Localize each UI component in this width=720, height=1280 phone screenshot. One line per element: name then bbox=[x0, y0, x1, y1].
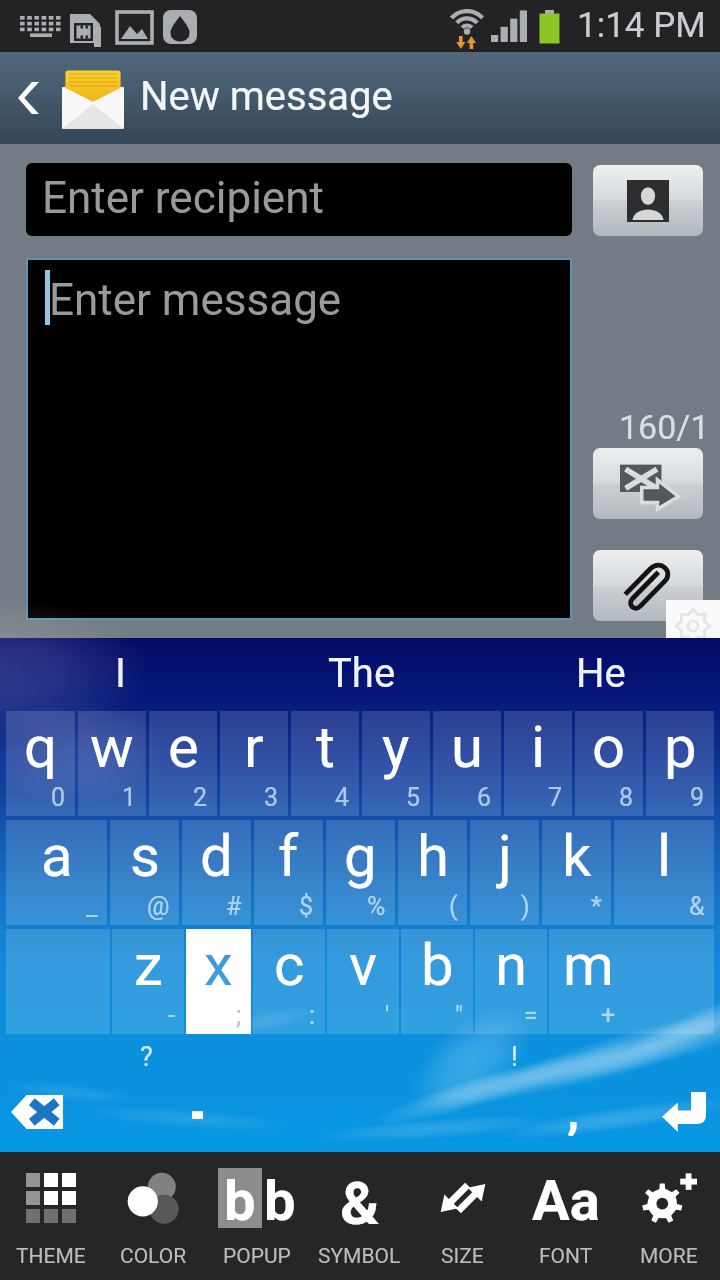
staticText: COLOR bbox=[120, 1244, 187, 1269]
staticText: 5 bbox=[406, 783, 421, 812]
staticText: 4 bbox=[335, 783, 350, 812]
button[interactable]: r bbox=[220, 711, 288, 816]
button[interactable] bbox=[170, 1087, 226, 1137]
staticText: q bbox=[24, 713, 57, 781]
button[interactable]: j bbox=[470, 820, 539, 925]
button[interactable]: Aa bbox=[514, 1152, 617, 1280]
button[interactable]: p bbox=[646, 711, 714, 816]
staticText: p bbox=[664, 713, 697, 781]
button[interactable]: n bbox=[475, 929, 547, 1034]
staticText: 2 bbox=[193, 783, 208, 812]
staticText: + bbox=[601, 1001, 616, 1030]
button[interactable]: h bbox=[398, 820, 467, 925]
button[interactable]: & bbox=[308, 1152, 411, 1280]
button[interactable]: Send message bbox=[593, 448, 703, 519]
staticText: * bbox=[591, 892, 602, 921]
button[interactable]: m bbox=[549, 929, 714, 1034]
button[interactable]: e bbox=[149, 711, 217, 816]
staticText: THEME bbox=[16, 1244, 86, 1269]
button[interactable]: , bbox=[545, 1082, 601, 1136]
staticText: ! bbox=[511, 1041, 518, 1073]
button[interactable]: I bbox=[0, 638, 241, 711]
staticText: SYMBOL bbox=[318, 1244, 401, 1269]
button[interactable]: He bbox=[482, 638, 720, 711]
button[interactable]: k bbox=[542, 820, 611, 925]
staticText: 160/1 bbox=[619, 407, 710, 447]
button[interactable]: w bbox=[78, 711, 146, 816]
button[interactable]: b bbox=[401, 929, 473, 1034]
button[interactable]: THEME bbox=[0, 1152, 102, 1280]
button[interactable]: Enter bbox=[650, 1084, 718, 1140]
button[interactable]: u bbox=[433, 711, 501, 816]
button[interactable]: a bbox=[6, 820, 107, 925]
button[interactable]: The bbox=[241, 638, 482, 711]
button[interactable]: s bbox=[110, 820, 179, 925]
button[interactable]: Shift bbox=[6, 929, 110, 1034]
staticText: , bbox=[567, 1082, 580, 1136]
staticText: a bbox=[41, 822, 73, 890]
button[interactable]: Enter message bbox=[28, 260, 570, 618]
button[interactable]: y bbox=[362, 711, 430, 816]
staticText: & bbox=[340, 1168, 380, 1228]
staticText: y bbox=[382, 713, 410, 781]
button[interactable]: f bbox=[254, 820, 323, 925]
button[interactable]: x bbox=[186, 929, 251, 1034]
staticText: He bbox=[576, 650, 626, 697]
staticText: - bbox=[168, 1001, 175, 1030]
staticText: Enter recipient bbox=[42, 172, 324, 224]
button[interactable]: c bbox=[253, 929, 325, 1034]
button[interactable]: z bbox=[112, 929, 184, 1034]
staticText: f bbox=[278, 822, 299, 890]
staticText: 6 bbox=[477, 783, 492, 812]
button[interactable]: b bbox=[205, 1152, 308, 1280]
staticText: ( bbox=[449, 892, 458, 921]
staticText: _ bbox=[86, 892, 98, 921]
staticText: 0 bbox=[51, 783, 66, 812]
staticText: i bbox=[531, 713, 546, 781]
staticText: 1 bbox=[122, 783, 137, 812]
staticText: k bbox=[562, 822, 592, 890]
staticText: 8 bbox=[619, 783, 634, 812]
staticText: & bbox=[689, 892, 705, 921]
staticText: b bbox=[421, 931, 454, 999]
staticText: ) bbox=[521, 892, 530, 921]
button[interactable]: Backspace bbox=[4, 1087, 70, 1137]
button[interactable]: MORE bbox=[617, 1152, 720, 1280]
staticText: MORE bbox=[640, 1244, 698, 1269]
staticText: New message bbox=[140, 73, 393, 120]
button[interactable]: d bbox=[182, 820, 251, 925]
button[interactable]: g bbox=[326, 820, 395, 925]
button[interactable]: Add recipient bbox=[593, 165, 703, 236]
button[interactable]: Attach bbox=[593, 550, 703, 621]
staticText: 9 bbox=[690, 783, 705, 812]
staticText: 3 bbox=[264, 783, 279, 812]
button[interactable]: t bbox=[291, 711, 359, 816]
button[interactable]: Keyboard settings bbox=[666, 600, 720, 651]
button[interactable]: v bbox=[327, 929, 399, 1034]
staticText: The bbox=[328, 650, 396, 697]
staticText: % bbox=[367, 892, 386, 921]
staticText: I bbox=[115, 650, 126, 697]
staticText: e bbox=[168, 713, 199, 781]
staticText: b bbox=[224, 1168, 256, 1228]
staticText: : bbox=[309, 1001, 316, 1030]
staticText: n bbox=[495, 931, 528, 999]
button[interactable]: q bbox=[6, 711, 75, 816]
staticText: ; bbox=[236, 1001, 242, 1030]
button[interactable]: i bbox=[504, 711, 572, 816]
button[interactable]: SIZE bbox=[411, 1152, 514, 1280]
button[interactable]: l bbox=[614, 820, 714, 925]
button[interactable]: o bbox=[575, 711, 643, 816]
button[interactable]: Enter recipient bbox=[26, 163, 572, 236]
staticText: g bbox=[344, 822, 377, 890]
staticText: j bbox=[498, 822, 512, 890]
staticText: s bbox=[130, 822, 160, 890]
staticText: x bbox=[204, 931, 233, 999]
staticText: r bbox=[244, 713, 264, 781]
staticText: 7 bbox=[548, 783, 563, 812]
button[interactable]: Back bbox=[0, 52, 56, 144]
staticText: " bbox=[455, 1001, 464, 1030]
button[interactable]: COLOR bbox=[102, 1152, 205, 1280]
staticText: c bbox=[274, 931, 305, 999]
staticText: ' bbox=[385, 1001, 390, 1030]
